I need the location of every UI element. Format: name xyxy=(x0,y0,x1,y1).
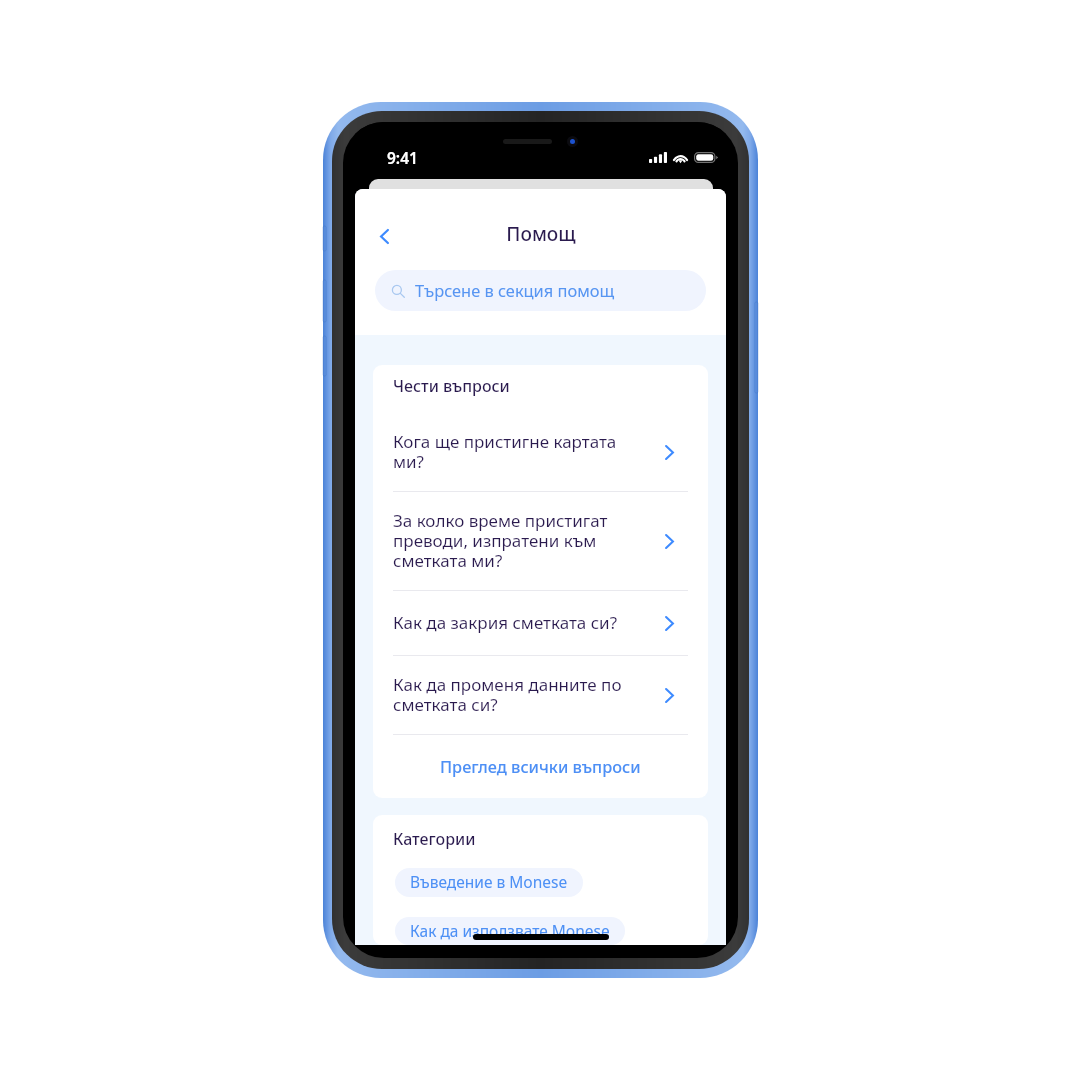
staticText: Как да закрия сметката си? xyxy=(393,613,624,633)
staticText: Търсене в секция помощ xyxy=(415,280,615,302)
staticText: Въведение в Monese xyxy=(410,873,568,892)
staticText: Помощ xyxy=(506,224,576,246)
button[interactable]: Как да закрия сметката си? xyxy=(373,591,708,655)
button[interactable]: Как да променя данните по сметката си? xyxy=(373,656,708,734)
staticText: 9:41 xyxy=(387,150,418,168)
button[interactable]: Back xyxy=(367,221,401,251)
button[interactable]: Преглед всички въпроси xyxy=(373,735,708,798)
staticText: Как да променя данните по сметката си? xyxy=(393,675,624,715)
staticText: Преглед всички въпроси xyxy=(440,756,641,778)
button[interactable]: Търсене в секция помощ xyxy=(375,270,706,311)
button[interactable]: Как да използвате Monese xyxy=(395,917,625,945)
staticText: Чести въпроси xyxy=(393,378,510,396)
button[interactable]: Кога ще пристигне картата ми? xyxy=(373,413,708,491)
staticText: Как да използвате Monese xyxy=(410,922,610,940)
staticText: Категории xyxy=(393,831,476,849)
button[interactable]: За колко време пристигат преводи, изпрат… xyxy=(373,492,708,590)
button[interactable]: Въведение в Monese xyxy=(395,868,583,897)
staticText: За колко време пристигат преводи, изпрат… xyxy=(393,511,624,571)
staticText: Кога ще пристигне картата ми? xyxy=(393,432,624,472)
